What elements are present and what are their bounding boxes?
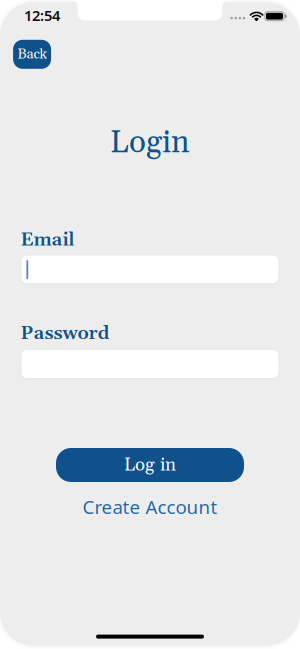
button[interactable]: Log in <box>56 448 244 482</box>
staticText: Password <box>20 322 109 345</box>
button[interactable]: Back <box>13 40 51 69</box>
textField[interactable] <box>21 349 278 379</box>
staticText: Email <box>20 228 74 252</box>
staticText: Back <box>18 45 47 63</box>
textField[interactable] <box>21 254 278 284</box>
staticText: 12:54 <box>24 6 60 25</box>
staticText: Log in <box>124 453 176 477</box>
staticText: Login <box>110 123 190 163</box>
staticText: Create Account <box>82 494 217 519</box>
button[interactable]: Create Account <box>82 494 217 519</box>
